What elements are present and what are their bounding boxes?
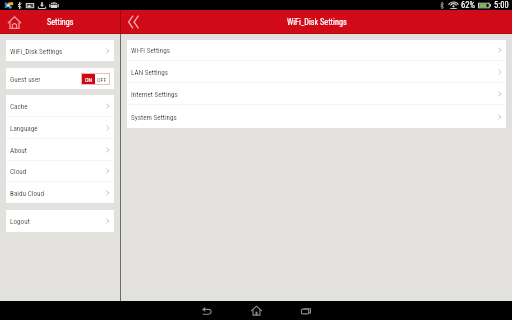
- button[interactable]: Home: [231, 301, 281, 320]
- button[interactable]: Baidu Cloud: [6, 182, 114, 203]
- button[interactable]: Home: [0, 10, 28, 34]
- button[interactable]: Back: [121, 10, 149, 34]
- staticText: Guest user: [10, 75, 41, 83]
- button[interactable]: WiFi_Disk Settings: [6, 40, 114, 61]
- button[interactable]: Cloud: [6, 161, 114, 181]
- staticText: Wi-Fi Settings: [131, 46, 170, 54]
- button[interactable]: LAN Settings: [127, 61, 506, 82]
- staticText: Logout: [10, 217, 30, 225]
- staticText: ON: [85, 76, 93, 83]
- staticText: Internet Settings: [131, 90, 178, 98]
- staticText: 62%: [461, 0, 475, 10]
- button[interactable]: Language: [6, 117, 114, 138]
- button[interactable]: About: [6, 139, 114, 160]
- staticText: System Settings: [131, 113, 177, 121]
- staticText: WiFi_Disk Settings: [10, 47, 63, 55]
- staticText: About: [10, 146, 27, 154]
- staticText: Cloud: [10, 167, 27, 175]
- staticText: OFF: [97, 76, 107, 83]
- staticText: Language: [10, 124, 38, 132]
- button[interactable]: Logout: [6, 210, 114, 232]
- staticText: LAN Settings: [131, 68, 169, 76]
- button[interactable]: Back: [181, 301, 231, 320]
- button[interactable]: System Settings: [127, 105, 506, 128]
- staticText: Settings: [47, 17, 74, 27]
- button[interactable]: Internet Settings: [127, 83, 506, 104]
- staticText: Baidu Cloud: [10, 189, 45, 197]
- button[interactable]: Guest user on: [82, 74, 95, 84]
- staticText: Cache: [10, 102, 28, 110]
- staticText: WiFi_Disk Settings: [287, 17, 347, 27]
- button[interactable]: Guest user off: [95, 74, 109, 84]
- button[interactable]: Cache: [6, 95, 114, 116]
- button[interactable]: Recent apps: [281, 301, 331, 320]
- button[interactable]: Wi-Fi Settings: [127, 40, 506, 60]
- staticText: 5:00: [494, 0, 509, 10]
